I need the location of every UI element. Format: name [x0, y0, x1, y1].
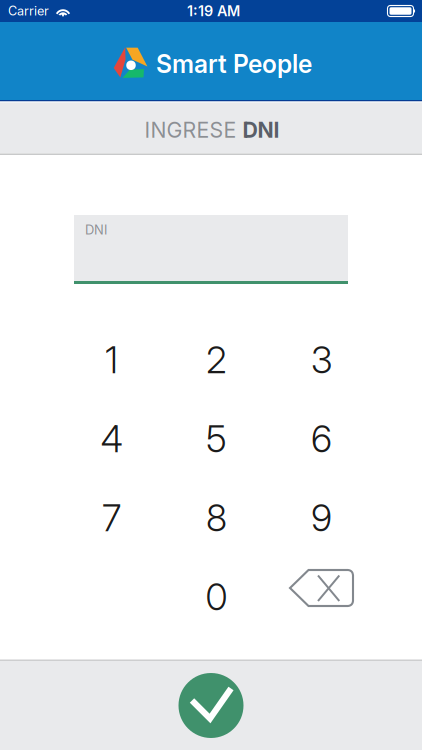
staticText: 7	[102, 496, 121, 540]
staticText: INGRESE	[144, 117, 242, 143]
button[interactable]: 1	[59, 320, 164, 399]
staticText: 8	[206, 496, 227, 540]
staticText: 0	[205, 575, 227, 619]
button[interactable]: 4	[59, 399, 164, 478]
button[interactable]: Delete	[269, 557, 374, 636]
button[interactable]: Confirm	[0, 661, 422, 750]
button[interactable]: 2	[164, 320, 269, 399]
button[interactable]: 5	[164, 399, 269, 478]
button[interactable]: 0	[164, 557, 269, 636]
staticText: 1:19 AM	[187, 2, 240, 20]
staticText: DNI	[242, 117, 279, 143]
staticText: 2	[206, 338, 227, 382]
button[interactable]: 6	[269, 399, 374, 478]
staticText: 3	[311, 338, 332, 382]
button[interactable]: 9	[269, 478, 374, 557]
button[interactable]: 7	[59, 478, 164, 557]
staticText: 9	[311, 496, 332, 540]
button[interactable]: 8	[164, 478, 269, 557]
staticText: 5	[206, 417, 227, 461]
staticText: Carrier	[8, 3, 49, 19]
staticText: 6	[311, 417, 332, 461]
button[interactable]: 3	[269, 320, 374, 399]
staticText: Smart People	[156, 49, 312, 79]
staticText: DNI	[85, 222, 107, 238]
staticText: 4	[100, 417, 122, 461]
staticText: 1	[105, 338, 118, 382]
